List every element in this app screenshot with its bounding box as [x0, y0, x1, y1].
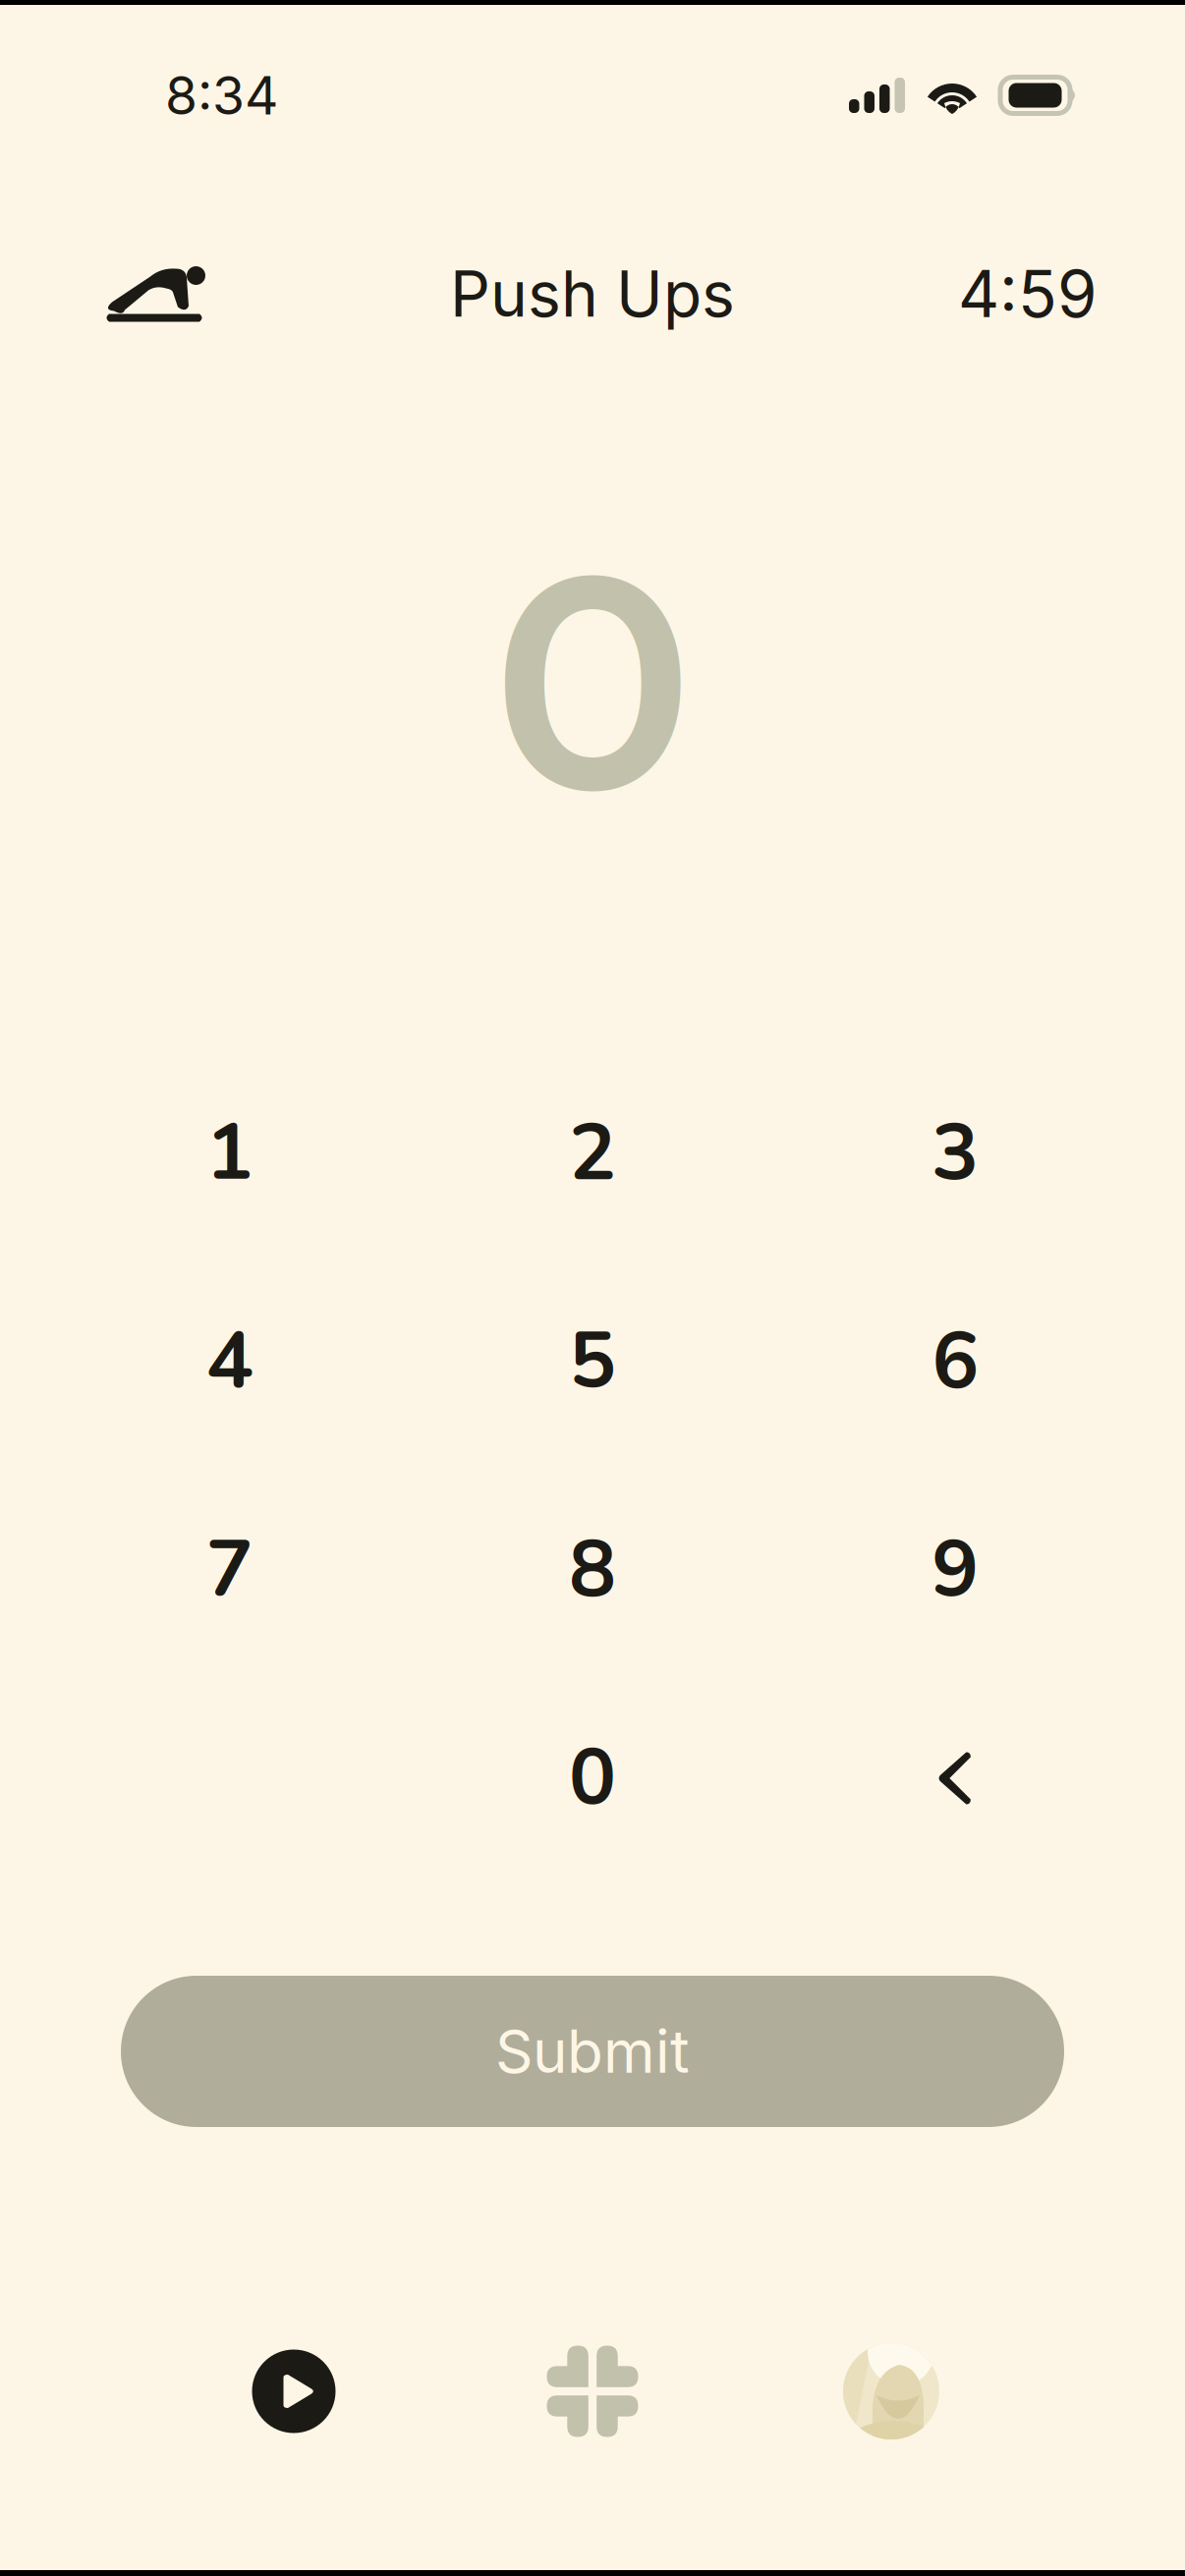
button[interactable]: 3	[774, 1049, 1137, 1258]
button[interactable]: 1	[48, 1049, 411, 1258]
button[interactable]: 5	[411, 1258, 774, 1466]
button[interactable]: 7	[48, 1466, 411, 1674]
staticText: 8:34	[165, 64, 278, 127]
button[interactable]: 9	[774, 1466, 1137, 1674]
staticText: Push Ups	[450, 256, 735, 332]
staticText: 8	[569, 1516, 616, 1624]
staticText: 2	[569, 1100, 616, 1207]
staticText: 4:59	[958, 255, 1098, 333]
staticText: 7	[206, 1516, 253, 1624]
button[interactable]: Submit	[121, 1976, 1064, 2127]
staticText: 3	[932, 1100, 979, 1207]
staticText: Submit	[495, 2016, 690, 2087]
button[interactable]: Profile	[832, 2332, 950, 2450]
staticText: 0	[569, 1725, 616, 1832]
staticText: 9	[932, 1516, 979, 1624]
button[interactable]: 4	[48, 1258, 411, 1466]
button[interactable]: Play	[235, 2332, 353, 2450]
button[interactable]: 0	[411, 1674, 774, 1882]
button[interactable]: 4:59	[958, 237, 1098, 351]
button[interactable]: Exercise type	[104, 237, 232, 351]
button[interactable]: Workouts	[534, 2332, 651, 2450]
staticText: 5	[569, 1308, 616, 1415]
button[interactable]: 8	[411, 1466, 774, 1674]
staticText: 4	[206, 1308, 253, 1415]
button[interactable]: 2	[411, 1049, 774, 1258]
button[interactable]: 6	[774, 1258, 1137, 1466]
button[interactable]: Delete	[774, 1674, 1137, 1882]
staticText: 1	[206, 1100, 253, 1207]
staticText: 6	[932, 1308, 979, 1415]
staticText: 0	[492, 498, 693, 864]
